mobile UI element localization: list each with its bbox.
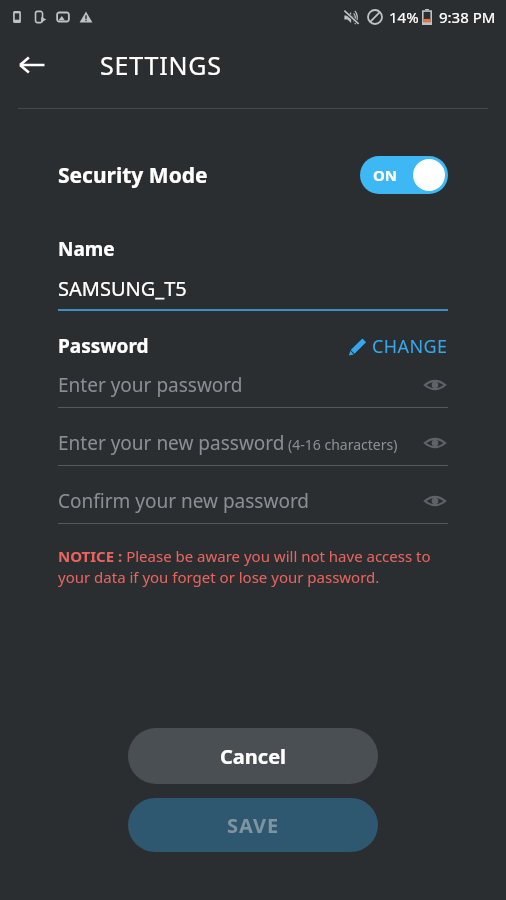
- staticText: ON: [373, 165, 398, 185]
- staticText: Security Mode: [58, 161, 208, 190]
- button[interactable]: Enter your new password (4-16 characters…: [58, 430, 448, 466]
- staticText: 14%: [389, 7, 419, 27]
- button[interactable]: Back: [10, 43, 54, 87]
- staticText: Cancel: [220, 743, 287, 770]
- button[interactable]: Show password: [422, 488, 448, 514]
- button[interactable]: Show password: [422, 430, 448, 456]
- staticText: Confirm your new password: [58, 488, 310, 514]
- button[interactable]: Enter your password: [58, 372, 448, 408]
- staticText: NOTICE : Please be aware you will not ha…: [58, 546, 448, 588]
- staticText: Password: [58, 333, 149, 359]
- button[interactable]: Show password: [422, 372, 448, 398]
- button[interactable]: CHANGE: [348, 334, 448, 359]
- staticText: SAVE: [227, 812, 280, 839]
- staticText: Name: [58, 236, 115, 262]
- staticText: SAMSUNG_T5: [58, 275, 187, 302]
- staticText: 9:38 PM: [439, 7, 496, 27]
- button[interactable]: Cancel: [128, 728, 378, 784]
- staticText: Enter your password: [58, 372, 243, 398]
- staticText: CHANGE: [372, 334, 448, 359]
- staticText: SETTINGS: [100, 48, 222, 82]
- button[interactable]: Confirm your new password: [58, 488, 448, 524]
- button[interactable]: Security Mode: [58, 156, 448, 194]
- staticText: Enter your new password (4-16 characters…: [58, 430, 398, 456]
- button[interactable]: SAVE: [128, 798, 378, 852]
